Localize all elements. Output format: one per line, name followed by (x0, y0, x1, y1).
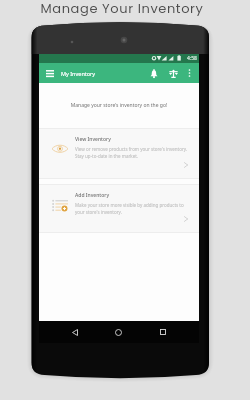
button[interactable]: Home (107, 321, 129, 343)
staticText: Stay up-to-date in the market. (75, 153, 139, 159)
button[interactable]: Marketplace (164, 63, 183, 83)
staticText: your store's inventory. (75, 209, 122, 215)
button[interactable]: Notifications (144, 63, 164, 83)
staticText: View or remove products from your store'… (75, 146, 188, 152)
button[interactable]: Add Inventory (39, 184, 199, 233)
staticText: View Inventory (75, 136, 111, 143)
button[interactable]: Recent apps (152, 321, 174, 343)
staticText: Add Inventory (75, 192, 110, 199)
staticText: Manage Your Inventory (0, 0, 247, 17)
button[interactable]: More options (183, 63, 196, 83)
staticText: My Inventory (61, 70, 96, 77)
staticText: Make your store more visible by adding p… (75, 202, 184, 208)
staticText: Manage your store's inventory on the go! (39, 102, 199, 109)
button[interactable]: Back (64, 321, 86, 343)
button[interactable]: Open navigation menu (39, 63, 61, 83)
staticText: 4:58 (187, 55, 197, 62)
button[interactable]: View Inventory (39, 128, 199, 179)
